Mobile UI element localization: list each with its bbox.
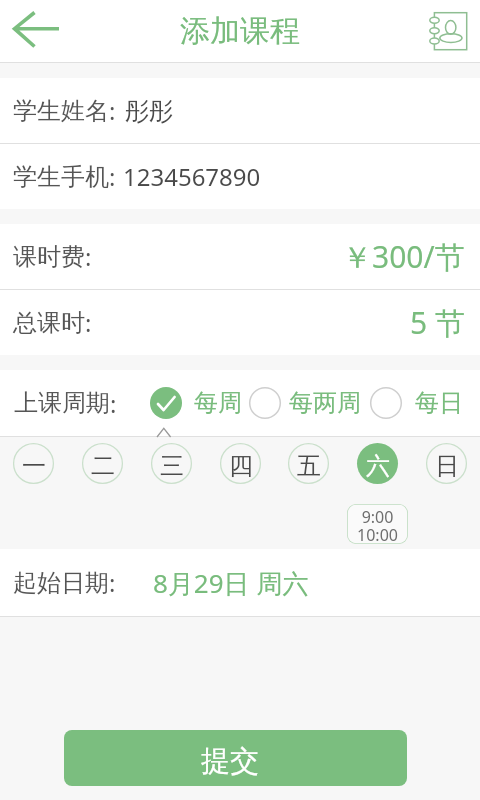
- button[interactable]: 六: [357, 443, 398, 484]
- button[interactable]: 五: [288, 443, 329, 484]
- staticText: 起始日期: [13, 568, 109, 598]
- staticText: 学生姓名: [13, 96, 109, 126]
- staticText: 8月29日 周六: [153, 565, 309, 601]
- button[interactable]: 日: [426, 443, 467, 484]
- button[interactable]: 9:00 10:00: [347, 504, 408, 544]
- button[interactable]: 学生姓名: [13, 78, 480, 143]
- staticText: 一: [22, 451, 46, 481]
- button[interactable]: 每两周: [249, 387, 361, 419]
- staticText: :: [85, 306, 92, 339]
- staticText: 二: [91, 451, 115, 481]
- staticText: 上课周期: [14, 388, 110, 418]
- staticText: :: [109, 160, 116, 193]
- staticText: 彤彤: [125, 96, 173, 126]
- button[interactable]: 四: [220, 443, 261, 484]
- staticText: :: [109, 94, 116, 127]
- staticText: 9:00 10:00: [357, 506, 398, 544]
- staticText: :: [109, 566, 116, 599]
- staticText: 三: [160, 451, 184, 481]
- staticText: 每日: [415, 388, 463, 418]
- button[interactable]: 课时费: [13, 224, 480, 289]
- staticText: 五: [297, 451, 321, 481]
- staticText: 学生手机: [13, 162, 109, 192]
- staticText: ￥300/节: [342, 236, 465, 277]
- staticText: :: [85, 240, 92, 273]
- staticText: :: [110, 387, 117, 420]
- button[interactable]: 每周: [150, 387, 242, 419]
- staticText: 添加课程: [180, 12, 300, 50]
- staticText: 1234567890: [123, 160, 261, 193]
- staticText: 每两周: [289, 388, 361, 418]
- staticText: 5 节: [410, 302, 465, 343]
- button[interactable]: 二: [82, 443, 123, 484]
- button[interactable]: 总课时: [13, 290, 480, 355]
- staticText: 日: [435, 451, 459, 481]
- staticText: 课时费: [13, 242, 85, 272]
- button[interactable]: 提交: [64, 730, 407, 786]
- button[interactable]: 三: [151, 443, 192, 484]
- button[interactable]: Contacts: [420, 2, 480, 62]
- button[interactable]: 学生手机: [13, 144, 480, 209]
- staticText: 每周: [194, 388, 242, 418]
- button[interactable]: Back: [0, 0, 62, 62]
- staticText: 提交: [201, 743, 259, 780]
- staticText: 总课时: [13, 308, 85, 338]
- button[interactable]: 每日: [370, 387, 463, 419]
- staticText: 四: [229, 451, 253, 481]
- button[interactable]: 一: [13, 443, 54, 484]
- staticText: 六: [366, 451, 390, 481]
